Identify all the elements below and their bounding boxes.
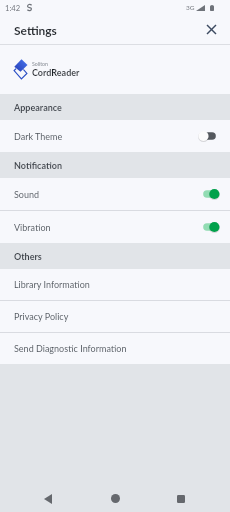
staticText: 1:42 [5,3,21,12]
button[interactable]: Recent apps [164,485,198,512]
staticText: Library Information [14,279,90,290]
staticText: Sound [14,189,199,200]
button[interactable]: Send Diagnostic Information [0,333,230,364]
staticText: Vibration [14,222,199,233]
staticText: Appearance [14,102,62,113]
staticText: Send Diagnostic Information [14,343,127,354]
staticText: Dark Theme [14,131,199,142]
staticText: 3G [186,4,195,12]
button[interactable]: Home [98,485,132,512]
staticText: Notification [14,160,62,171]
staticText: Settings [14,23,57,37]
button[interactable]: Vibration [0,211,230,243]
button[interactable]: Library Information [0,269,230,300]
staticText: CordReader [32,67,80,78]
staticText: Privacy Policy [14,311,69,322]
button[interactable]: Back [31,485,65,512]
button[interactable]: Close [200,18,222,40]
staticText: Soliton [32,61,48,67]
staticText: Others [14,251,42,262]
button[interactable]: Privacy Policy [0,301,230,332]
button[interactable]: Sound [0,178,230,210]
button[interactable]: Dark Theme [0,120,230,152]
